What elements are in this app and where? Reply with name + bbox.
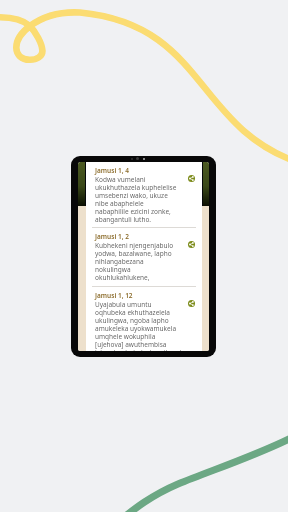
staticText: Kodwa vumelani ukukhuthazela kuphelelise…: [95, 175, 177, 224]
button[interactable]: Jamusi 1, 2: [86, 232, 202, 282]
staticText: Kubhekeni njengenjabulo yodwa, bazalwane…: [95, 241, 174, 282]
button[interactable]: Jamusi 1, 4: [86, 166, 202, 224]
button[interactable]: Jamusi 1, 12: [86, 291, 202, 351]
button[interactable]: Share: [187, 240, 195, 248]
button[interactable]: Share: [187, 174, 195, 182]
staticText: Jamusi 1, 2: [95, 232, 129, 241]
staticText: Jamusi 1, 12: [95, 291, 133, 300]
staticText: Uyajabula umuntu oqhubeka ekhuthazelela …: [95, 300, 187, 351]
staticText: Jamusi 1, 4: [95, 166, 129, 175]
button[interactable]: Share: [187, 299, 195, 307]
